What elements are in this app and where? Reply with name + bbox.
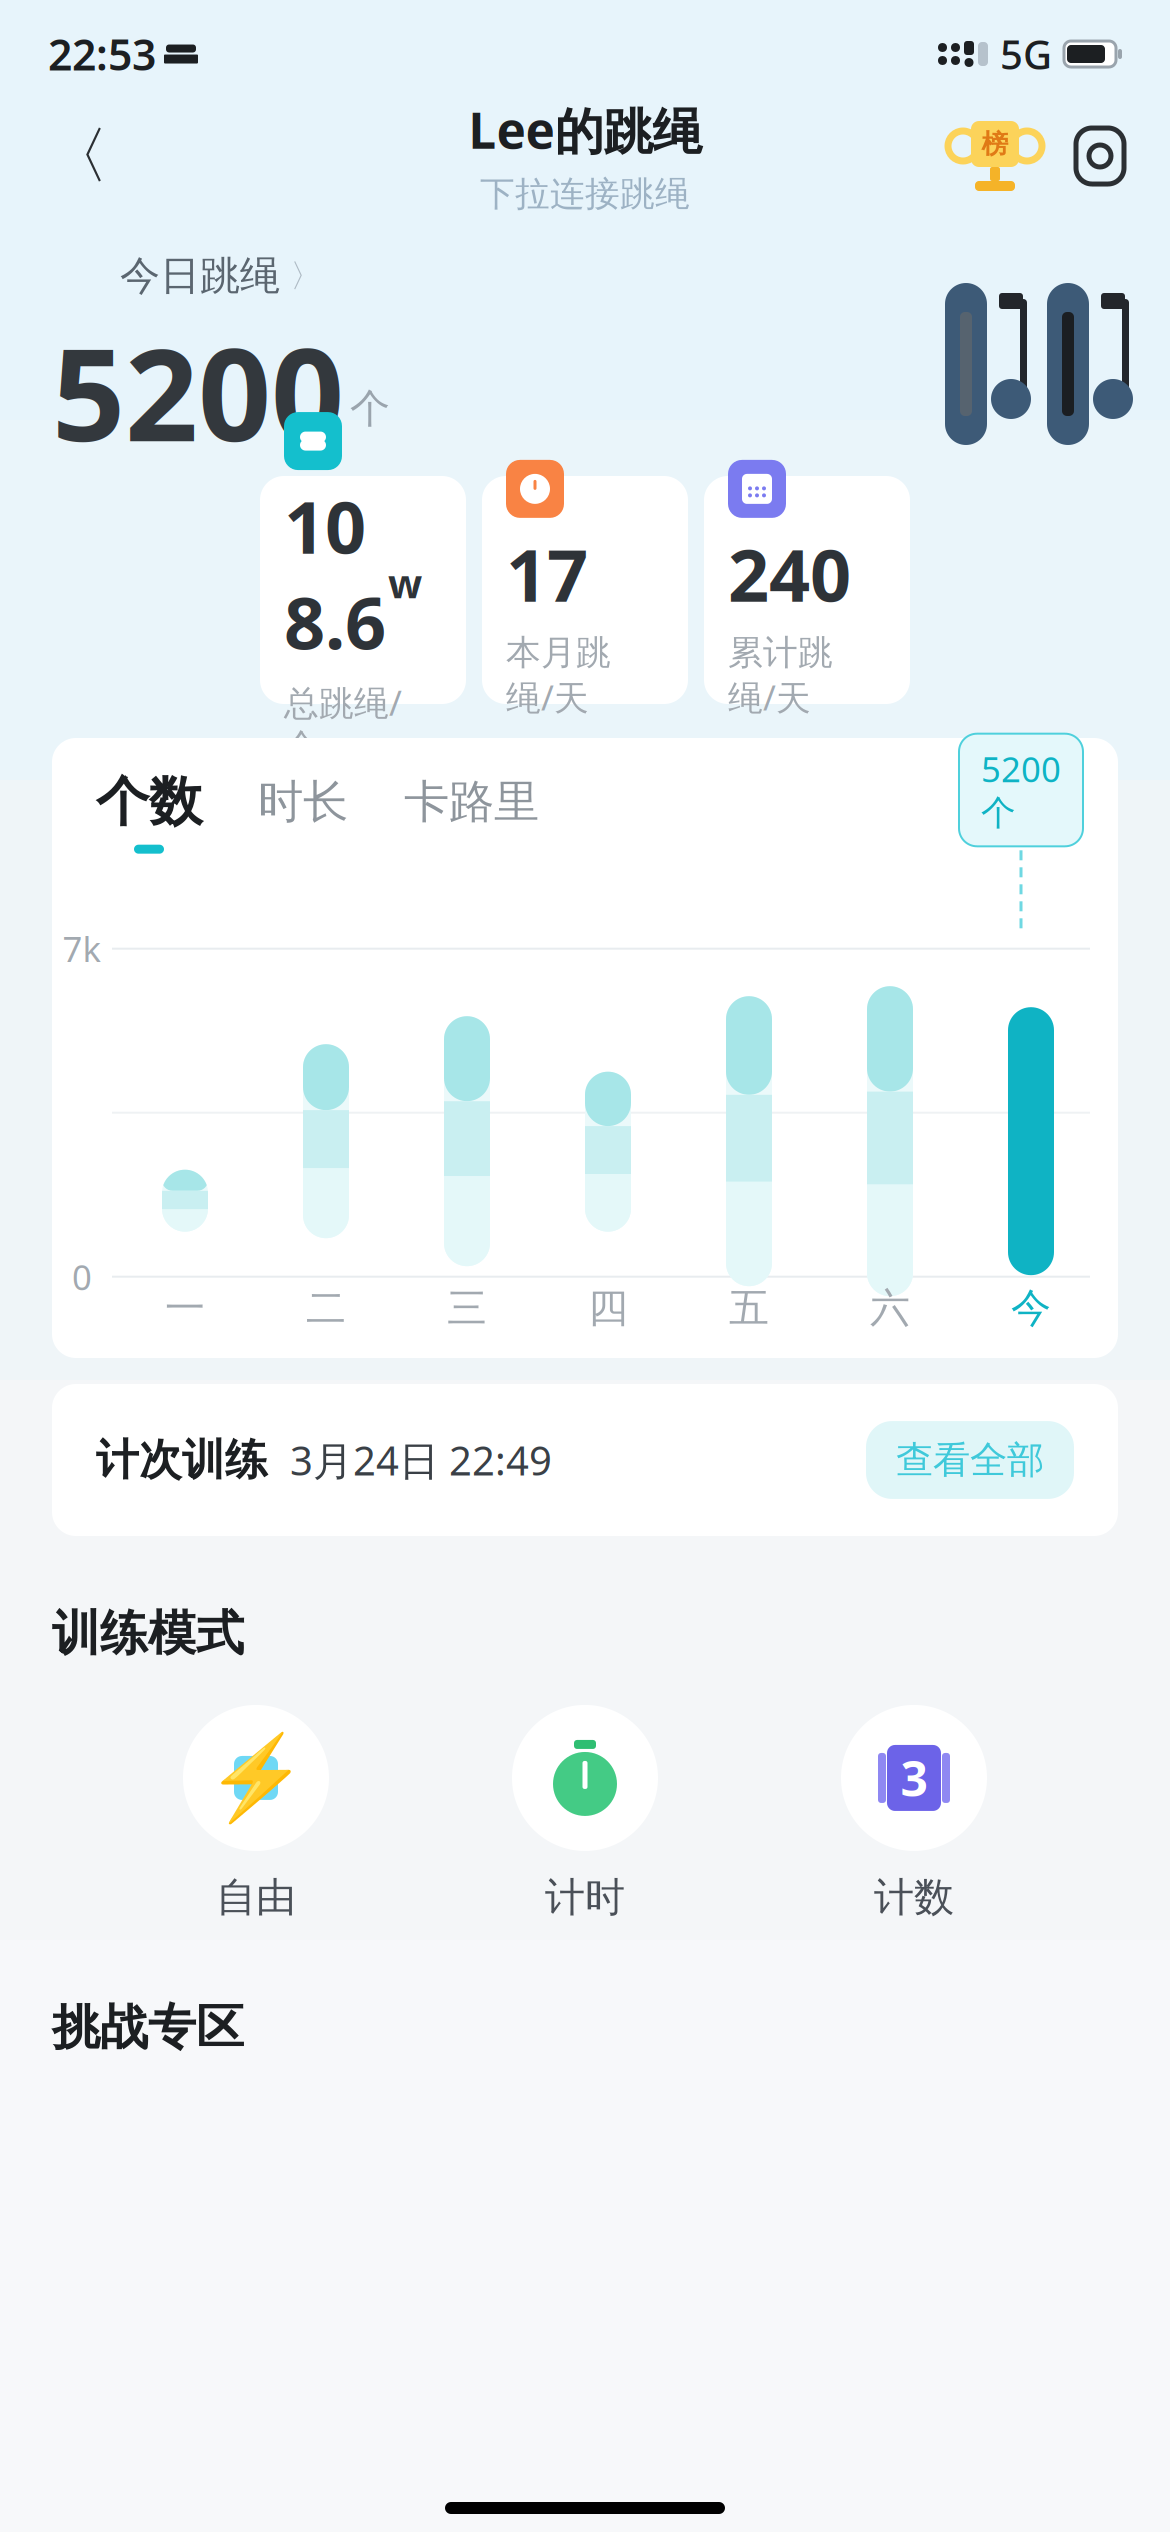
staticText: 二: [306, 1284, 346, 1333]
staticText: 下拉连接跳绳: [480, 173, 690, 215]
staticText: 3月24日 22:49: [290, 1433, 552, 1486]
staticText: 计数: [874, 1873, 954, 1922]
staticText: 训练模式: [52, 1604, 244, 1663]
staticText: 〈: [47, 118, 108, 194]
staticText: 108.6: [284, 478, 386, 669]
button[interactable]: 计次训练: [52, 1384, 1118, 1536]
button[interactable]: 17: [482, 476, 688, 704]
staticText: 一: [165, 1284, 205, 1333]
staticText: 累计跳绳/天: [728, 631, 833, 720]
staticText: 7k: [62, 926, 101, 972]
button[interactable]: 卡路里: [404, 774, 539, 849]
button[interactable]: 3: [841, 1705, 987, 1922]
staticText: 0: [72, 1254, 92, 1300]
staticText: 5200个: [981, 746, 1061, 834]
staticText: 计时: [545, 1873, 625, 1922]
staticText: 五: [729, 1284, 769, 1333]
staticText: Lee的跳绳: [468, 97, 701, 163]
staticText: 今日跳绳: [120, 251, 280, 300]
staticText: 本月跳绳/天: [506, 631, 611, 720]
staticText: 查看全部: [896, 1437, 1044, 1483]
staticText: 240: [728, 526, 851, 621]
staticText: 三: [447, 1284, 487, 1333]
button[interactable]: ⚡: [183, 1705, 329, 1922]
staticText: 22:53: [48, 26, 156, 82]
button[interactable]: 设置: [1064, 120, 1136, 192]
button[interactable]: 今日跳绳: [120, 251, 322, 300]
staticText: ⚡: [204, 1731, 307, 1825]
staticText: 总跳绳/个: [284, 679, 402, 768]
staticText: 时长: [258, 774, 348, 830]
staticText: 个数: [96, 769, 202, 835]
staticText: 计次训练: [96, 1434, 268, 1486]
staticText: w: [388, 556, 422, 609]
button[interactable]: 返回: [34, 112, 122, 200]
button[interactable]: 240: [704, 476, 910, 704]
button[interactable]: 108.6: [260, 476, 466, 704]
button[interactable]: 时长: [258, 774, 348, 849]
staticText: 5G: [1000, 27, 1052, 80]
staticText: 卡路里: [404, 774, 539, 830]
staticText: 六: [870, 1284, 910, 1333]
button[interactable]: 排行榜: [956, 114, 1034, 198]
staticText: 〉: [290, 256, 322, 296]
staticText: 四: [588, 1284, 628, 1333]
button[interactable]: 计时: [512, 1705, 658, 1922]
staticText: 5200: [52, 307, 344, 477]
staticText: 自由: [216, 1873, 296, 1922]
staticText: 今: [1011, 1284, 1051, 1333]
staticText: 17: [506, 526, 588, 621]
staticText: 榜: [981, 128, 1008, 160]
staticText: 3: [900, 1746, 927, 1810]
staticText: 挑战专区: [52, 1998, 244, 2057]
button[interactable]: 个数: [96, 769, 202, 854]
staticText: 个: [350, 384, 390, 433]
